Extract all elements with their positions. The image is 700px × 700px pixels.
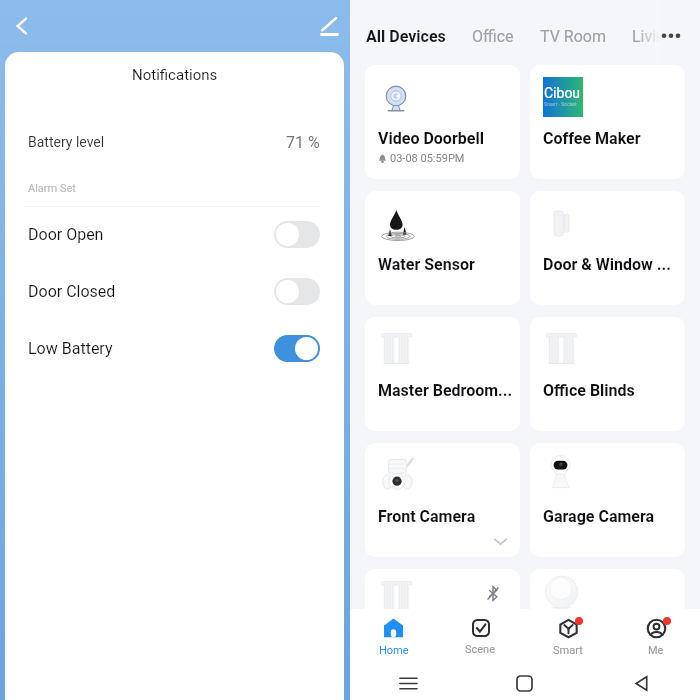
button[interactable]: Door Open: [5, 206, 344, 263]
button[interactable]: Office: [472, 27, 514, 46]
button[interactable]: Smart: [524, 609, 612, 666]
staticText: Front Camera: [378, 507, 476, 526]
staticText: Me: [648, 644, 664, 657]
button[interactable]: Living Room: [632, 27, 700, 46]
staticText: Cibou: [544, 85, 581, 101]
staticText: Notifications: [132, 66, 218, 84]
button[interactable]: Me: [612, 609, 700, 666]
button[interactable]: Garage Camera: [530, 443, 685, 557]
button[interactable]: Master Bedroom...: [365, 317, 520, 431]
staticText: Living Room: [632, 27, 700, 46]
button[interactable]: Low Battery: [5, 320, 344, 377]
button[interactable]: Back: [5, 9, 39, 43]
staticText: Video Doorbell: [378, 129, 484, 148]
button[interactable]: Video Doorbell: [365, 65, 520, 179]
button[interactable]: [365, 569, 520, 683]
staticText: Battery level: [28, 134, 105, 150]
button[interactable]: Front Camera: [365, 443, 520, 557]
staticText: Office Blinds: [543, 381, 635, 400]
button[interactable]: All Devices: [366, 27, 446, 46]
button[interactable]: Recent apps: [350, 666, 466, 700]
staticText: All Devices: [366, 27, 446, 46]
button[interactable]: [530, 569, 685, 683]
staticText: Master Bedroom...: [378, 381, 513, 400]
button[interactable]: Door & Window ...: [530, 191, 685, 305]
staticText: 71 %: [286, 133, 320, 152]
staticText: TV Room: [540, 27, 606, 46]
button[interactable]: Back: [583, 666, 700, 700]
staticText: Coffee Maker: [543, 129, 641, 148]
button[interactable]: More options: [656, 22, 686, 52]
button[interactable]: Cibou: [530, 65, 685, 179]
staticText: Garage Camera: [543, 507, 655, 526]
staticText: Door Open: [28, 225, 104, 244]
button[interactable]: Home: [350, 609, 437, 666]
button[interactable]: Edit: [312, 9, 346, 43]
button[interactable]: Door Closed: [5, 263, 344, 320]
staticText: Low Battery: [28, 339, 113, 358]
staticText: Office: [472, 27, 514, 46]
staticText: 03-08 05:59PM: [390, 152, 465, 165]
staticText: Door & Window ...: [543, 255, 671, 274]
button[interactable]: Water Sensor: [365, 191, 520, 305]
staticText: Smart · Socket: [544, 101, 577, 107]
staticText: Door Closed: [28, 282, 116, 301]
staticText: Alarm Set: [28, 182, 76, 195]
button[interactable]: TV Room: [540, 27, 606, 46]
button[interactable]: Scene: [437, 609, 524, 666]
staticText: Smart: [553, 644, 583, 657]
staticText: Scene: [465, 643, 496, 656]
staticText: Home: [379, 644, 409, 657]
staticText: Water Sensor: [378, 255, 475, 274]
button[interactable]: Home: [466, 666, 583, 700]
button[interactable]: Office Blinds: [530, 317, 685, 431]
